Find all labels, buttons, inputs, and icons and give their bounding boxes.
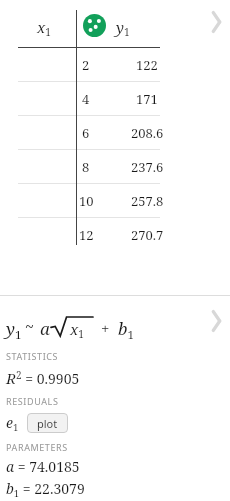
- button[interactable]: 8: [0, 150, 230, 183]
- staticText: plot: [37, 416, 58, 431]
- staticText: y1: [116, 17, 130, 39]
- staticText: 6: [82, 124, 90, 142]
- staticText: R2 = 0.9905: [6, 368, 80, 388]
- button[interactable]: Expand: [204, 306, 226, 336]
- button[interactable]: 10: [0, 184, 230, 217]
- staticText: b1 = 22.3079: [6, 479, 85, 500]
- staticText: 257.8: [131, 192, 164, 210]
- button[interactable]: 2: [0, 48, 230, 81]
- staticText: a = 74.0185: [6, 457, 80, 476]
- staticText: 237.6: [131, 158, 164, 176]
- button[interactable]: 12: [0, 218, 230, 251]
- staticText: PARAMETERS: [6, 441, 68, 453]
- button[interactable]: Expand: [204, 7, 226, 37]
- staticText: 4: [82, 90, 90, 108]
- staticText: 171: [136, 90, 158, 108]
- button[interactable]: 4: [0, 82, 230, 115]
- staticText: ~: [25, 315, 34, 337]
- staticText: y1: [6, 317, 22, 342]
- button[interactable]: 6: [0, 116, 230, 149]
- staticText: 12: [79, 226, 94, 244]
- staticText: e1: [6, 413, 19, 434]
- staticText: 270.7: [131, 226, 164, 244]
- staticText: 2: [82, 56, 90, 74]
- staticText: STATISTICS: [6, 350, 59, 362]
- button[interactable]: y1: [0, 306, 230, 346]
- staticText: 10: [79, 192, 94, 210]
- button[interactable]: plot: [27, 413, 68, 433]
- staticText: b1: [118, 317, 135, 342]
- button[interactable]: Point style: [83, 14, 106, 37]
- staticText: RESIDUALS: [6, 395, 59, 407]
- staticText: a: [40, 317, 50, 340]
- staticText: x1: [37, 17, 51, 39]
- staticText: x1: [70, 319, 84, 341]
- staticText: 122: [136, 56, 158, 74]
- staticText: 208.6: [131, 124, 164, 142]
- staticText: 8: [82, 158, 90, 176]
- staticText: +: [101, 318, 110, 338]
